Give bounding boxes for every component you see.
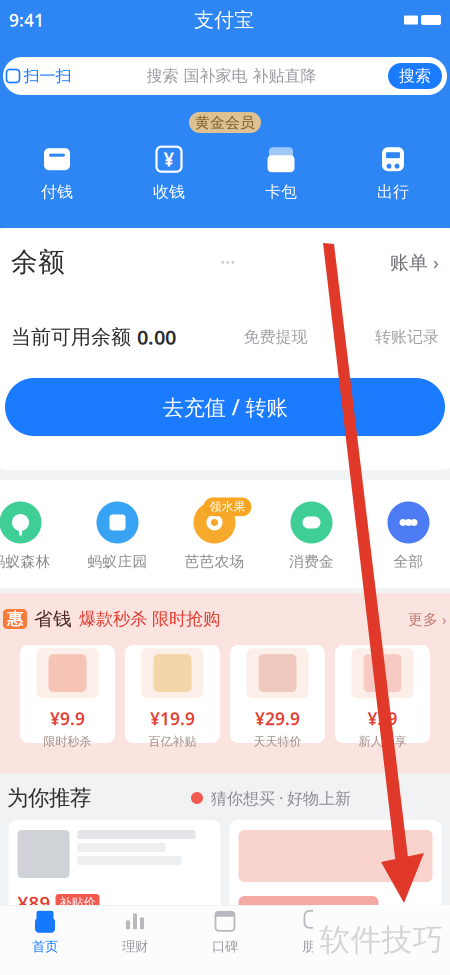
staticText: ¥89 <box>17 890 50 915</box>
staticText: 首页 <box>32 938 58 955</box>
staticText: 支付宝 <box>194 8 254 32</box>
staticText: 免费提现 <box>243 327 307 347</box>
staticText: 惠 <box>7 609 23 629</box>
staticText: 消费金 <box>289 552 334 570</box>
staticText: 收钱 <box>153 182 185 202</box>
staticText: 搜索 国补家电 补贴直降 <box>146 66 316 86</box>
button[interactable]: 扫一扫 <box>3 59 75 93</box>
staticText: 芭芭农场 <box>184 552 244 570</box>
staticText: 当前可用余额 <box>11 325 131 349</box>
staticText: 省钱 <box>34 607 72 630</box>
staticText: 转账记录 <box>375 327 439 347</box>
staticText: 蚂蚁森林 <box>0 552 50 570</box>
staticText: 搜索 <box>399 66 431 86</box>
button[interactable]: 我的 <box>360 906 450 956</box>
staticText: ¥29.9 <box>255 707 300 730</box>
staticText: ¥19.9 <box>150 707 195 730</box>
button[interactable]: 理财 <box>90 906 180 956</box>
button[interactable]: 消费金 <box>263 488 360 580</box>
staticText: 软件技巧 <box>319 921 443 959</box>
button[interactable]: 领水果 <box>166 488 263 580</box>
staticText: 天天特价 <box>253 734 301 749</box>
button[interactable]: ¥ <box>113 140 225 206</box>
staticText: 去充值 / 转账 <box>162 393 287 421</box>
button[interactable]: 蚂蚁森林 <box>0 488 69 580</box>
staticText: 补贴价 <box>59 895 95 910</box>
button[interactable]: 去充值 / 转账 <box>5 378 445 436</box>
button[interactable]: 蚂蚁庄园 <box>69 488 166 580</box>
staticText: 付钱 <box>41 182 73 202</box>
staticText: ¥39 <box>367 707 397 730</box>
staticText: 限时秒杀 <box>43 734 91 749</box>
button[interactable]: 黄金会员 <box>189 112 261 133</box>
button[interactable]: 账单 › <box>390 250 439 274</box>
button[interactable]: 搜索 <box>388 63 447 89</box>
button[interactable]: ¥19.9 <box>125 645 220 743</box>
staticText: 余额 <box>11 246 65 278</box>
button[interactable]: 首页 <box>0 906 90 956</box>
staticText: 猜你想买 · 好物上新 <box>211 787 351 809</box>
staticText: 出行 <box>377 182 409 202</box>
staticText: ¥ <box>163 147 174 172</box>
staticText: 爆款秒杀 限时抢购 <box>79 608 220 630</box>
button[interactable]: ¥129 <box>229 820 441 975</box>
staticText: ¥9.9 <box>50 707 85 730</box>
staticText: 我的 <box>392 938 418 955</box>
staticText: ··· <box>220 249 235 275</box>
staticText: 百亿补贴 <box>148 734 196 749</box>
staticText: 黄金会员 <box>195 113 255 131</box>
staticText: 卡包 <box>265 182 297 202</box>
button[interactable]: 口碑 <box>180 906 270 956</box>
staticText: 领水果 <box>209 499 245 514</box>
button[interactable]: ¥89 <box>8 820 220 975</box>
button[interactable]: 朋友 <box>270 906 360 956</box>
staticText: 秒杀 <box>291 939 315 954</box>
button[interactable]: ¥39 <box>335 645 430 743</box>
button[interactable]: ¥29.9 <box>230 645 325 743</box>
staticText: 9:41 <box>9 8 44 31</box>
staticText: 为你推荐 <box>7 785 91 811</box>
staticText: 扫一扫 <box>23 66 71 86</box>
button[interactable]: ¥9.9 <box>20 645 115 743</box>
button[interactable]: 全部 <box>360 488 450 580</box>
staticText: 新人专享 <box>358 734 406 749</box>
staticText: 朋友 <box>302 938 328 955</box>
button[interactable]: 出行 <box>337 140 449 206</box>
staticText: 0.00 <box>137 324 176 350</box>
button[interactable]: 付钱 <box>1 140 113 206</box>
button[interactable]: 卡包 <box>225 140 337 206</box>
staticText: 全部 <box>393 552 423 570</box>
staticText: 理财 <box>122 938 148 955</box>
staticText: 账单 › <box>390 250 439 274</box>
staticText: 口碑 <box>212 938 238 955</box>
button[interactable]: 更多 › <box>408 609 447 629</box>
staticText: 蚂蚁庄园 <box>87 552 147 570</box>
staticText: 更多 › <box>408 609 447 629</box>
